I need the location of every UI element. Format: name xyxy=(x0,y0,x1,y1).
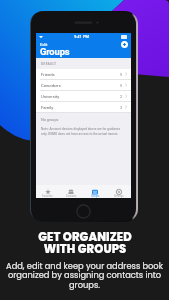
button[interactable]: Settings xyxy=(107,186,131,198)
button[interactable]: Friends xyxy=(36,69,131,80)
staticText: 2 xyxy=(120,94,123,99)
staticText: Note: Account devices displayed above ar… xyxy=(41,127,126,136)
button[interactable]: University xyxy=(36,91,131,102)
staticText: Groups xyxy=(40,46,70,57)
staticText: Coworkers xyxy=(41,83,61,88)
staticText: University xyxy=(41,94,60,99)
button[interactable]: Family xyxy=(36,102,131,113)
staticText: 5 xyxy=(120,72,123,77)
button[interactable]: Contacts xyxy=(59,186,83,198)
button[interactable]: Favorites xyxy=(36,186,59,198)
staticText: Settings xyxy=(114,195,124,198)
staticText: GET ORGANIZED WITH GROUPS xyxy=(38,229,132,257)
staticText: Groups xyxy=(91,195,100,198)
staticText: 3 xyxy=(120,105,123,110)
staticText: No groups xyxy=(41,117,59,121)
staticText: 9:41 PM xyxy=(74,34,89,39)
staticText: Friends xyxy=(41,72,55,77)
staticText: 5 xyxy=(120,83,123,88)
staticText: Family xyxy=(41,105,54,110)
button[interactable]: Coworkers xyxy=(36,80,131,91)
staticText: Favorites xyxy=(42,195,53,198)
staticText: Add, edit and keep your address book org… xyxy=(6,260,163,291)
button[interactable]: Groups xyxy=(83,186,107,198)
staticText: DEFAULT xyxy=(41,62,57,66)
button[interactable]: Add group xyxy=(121,41,128,48)
staticText: Contacts xyxy=(66,195,77,198)
button[interactable]: Edit xyxy=(40,42,48,47)
